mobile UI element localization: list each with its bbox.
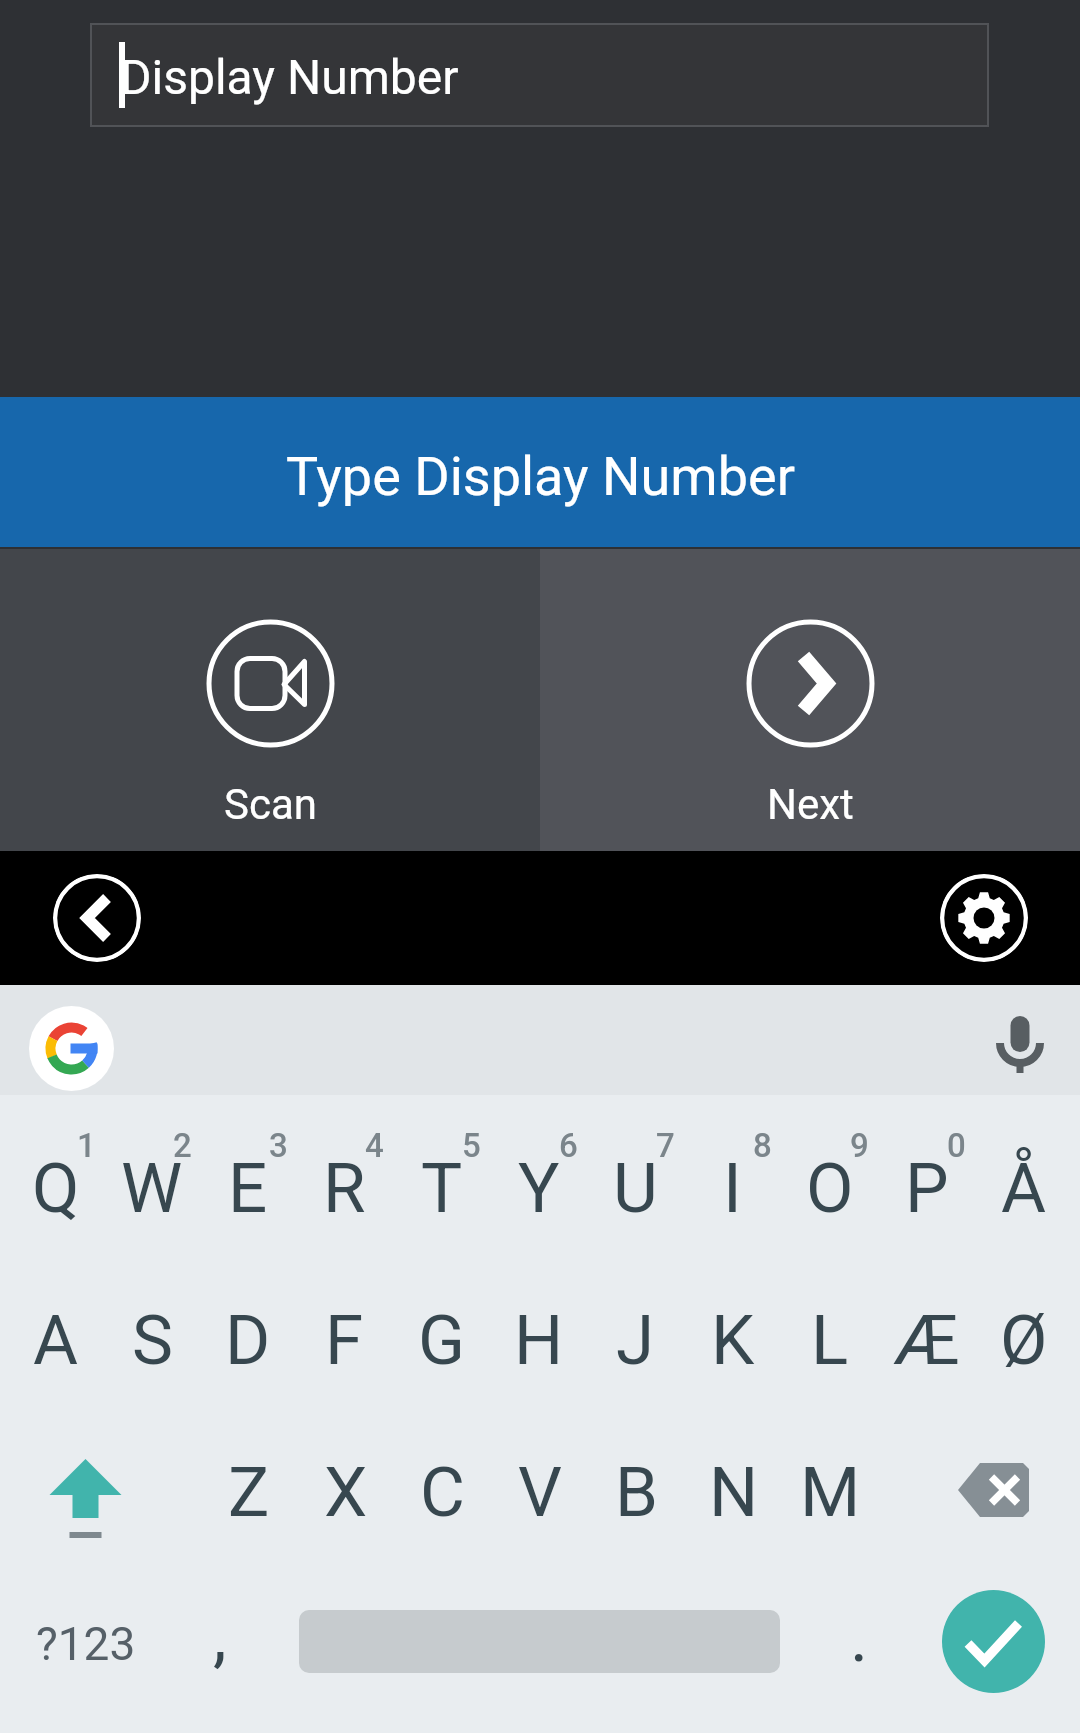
button[interactable]: Z — [200, 1405, 297, 1557]
staticText: U — [613, 1148, 658, 1229]
button[interactable]: Enter — [942, 1590, 1045, 1693]
staticText: G — [418, 1300, 465, 1381]
button[interactable]: Type Display Number — [0, 397, 1080, 547]
staticText: 6 — [559, 1126, 578, 1165]
staticText: 8 — [753, 1126, 772, 1165]
staticText: . — [850, 1597, 869, 1678]
button[interactable]: 9 — [781, 1095, 878, 1253]
staticText: Scan — [224, 780, 317, 829]
button[interactable]: C — [394, 1405, 491, 1557]
staticText: F — [325, 1300, 364, 1381]
staticText: K — [711, 1300, 755, 1381]
staticText: , — [213, 1595, 227, 1676]
staticText: Z — [228, 1452, 270, 1533]
button[interactable]: Backspace — [910, 1405, 1080, 1557]
button[interactable]: G — [393, 1253, 490, 1405]
staticText: L — [811, 1300, 849, 1381]
button[interactable]: ?123 — [0, 1557, 172, 1733]
staticText: R — [323, 1148, 366, 1229]
staticText: A — [33, 1300, 79, 1381]
button[interactable]: A — [8, 1253, 104, 1405]
staticText: Ø — [1000, 1300, 1048, 1381]
staticText: 4 — [365, 1126, 384, 1165]
staticText: C — [420, 1452, 465, 1533]
staticText: O — [806, 1148, 854, 1229]
button[interactable]: Google search — [29, 1006, 114, 1091]
staticText: Type Display Number — [286, 445, 795, 508]
button[interactable]: 2 — [104, 1095, 200, 1253]
staticText: Å — [1001, 1148, 1047, 1229]
button[interactable]: Voice input — [978, 1001, 1062, 1085]
button[interactable]: Settings — [940, 874, 1028, 962]
staticText: N — [709, 1452, 759, 1533]
button[interactable]: Å — [975, 1095, 1072, 1253]
button[interactable]: M — [782, 1405, 879, 1557]
staticText: 1 — [77, 1126, 96, 1165]
button[interactable]: L — [781, 1253, 878, 1405]
staticText: P — [905, 1148, 949, 1229]
staticText: 9 — [850, 1126, 869, 1165]
staticText: E — [228, 1148, 268, 1229]
button[interactable]: 3 — [200, 1095, 296, 1253]
button[interactable]: Scan — [0, 549, 540, 851]
button[interactable]: Display Number — [90, 23, 989, 127]
staticText: B — [615, 1452, 658, 1533]
button[interactable]: 1 — [8, 1095, 104, 1253]
staticText: M — [800, 1452, 861, 1533]
button[interactable]: Ø — [975, 1253, 1072, 1405]
button[interactable]: S — [104, 1253, 200, 1405]
button[interactable]: Æ — [878, 1253, 975, 1405]
staticText: X — [324, 1452, 368, 1533]
button[interactable]: 5 — [393, 1095, 490, 1253]
button[interactable]: 0 — [878, 1095, 975, 1253]
button[interactable]: N — [685, 1405, 782, 1557]
button[interactable]: F — [296, 1253, 393, 1405]
staticText: Æ — [894, 1300, 959, 1381]
button[interactable]: H — [490, 1253, 587, 1405]
staticText: Next — [767, 780, 854, 829]
button[interactable]: 8 — [684, 1095, 781, 1253]
staticText: 0 — [947, 1126, 966, 1165]
staticText: 5 — [462, 1126, 481, 1165]
staticText: Display Number — [120, 49, 459, 105]
staticText: Y — [518, 1148, 560, 1229]
staticText: J — [616, 1300, 655, 1381]
button[interactable]: J — [587, 1253, 684, 1405]
button[interactable]: Next — [540, 549, 1080, 851]
staticText: 3 — [269, 1126, 288, 1165]
button[interactable]: V — [491, 1405, 588, 1557]
button[interactable]: K — [684, 1253, 781, 1405]
button[interactable]: Shift — [0, 1405, 170, 1557]
button[interactable]: 6 — [490, 1095, 587, 1253]
button[interactable]: 7 — [587, 1095, 684, 1253]
staticText: T — [421, 1148, 463, 1229]
button[interactable]: 4 — [296, 1095, 393, 1253]
staticText: H — [514, 1300, 564, 1381]
staticText: ?123 — [36, 1617, 136, 1671]
button[interactable]: Back — [53, 874, 141, 962]
staticText: V — [518, 1452, 562, 1533]
button[interactable]: X — [297, 1405, 394, 1557]
button[interactable]: B — [588, 1405, 685, 1557]
staticText: 7 — [656, 1126, 675, 1165]
staticText: W — [121, 1148, 183, 1229]
staticText: Q — [32, 1148, 80, 1229]
staticText: D — [225, 1300, 271, 1381]
button[interactable]: D — [200, 1253, 296, 1405]
staticText: 2 — [173, 1126, 192, 1165]
button[interactable]: , — [172, 1557, 267, 1733]
staticText: S — [132, 1300, 173, 1381]
staticText: I — [723, 1148, 742, 1229]
button[interactable]: . — [812, 1557, 907, 1733]
